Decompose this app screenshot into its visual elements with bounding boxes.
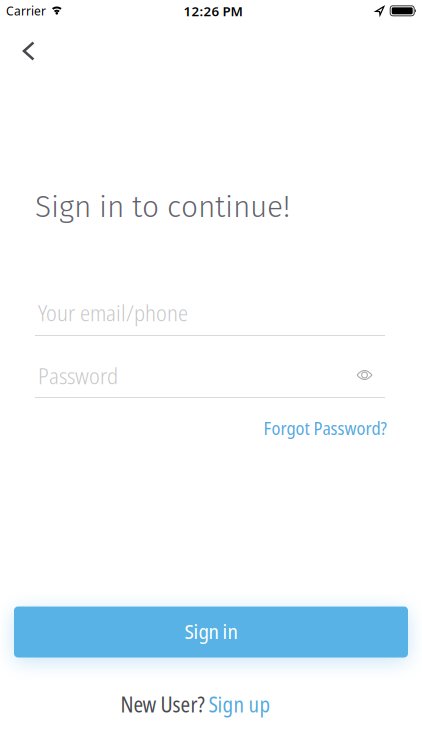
staticText: Sign in — [184, 617, 237, 645]
staticText: Sign up — [208, 690, 270, 719]
staticText: New User? — [120, 690, 204, 719]
staticText: 12:26 PM — [183, 2, 242, 20]
staticText: Carrier — [6, 3, 46, 19]
staticText: Password — [38, 360, 118, 391]
staticText: Your email/phone — [38, 297, 188, 328]
button[interactable]: Sign in — [14, 606, 408, 657]
button[interactable]: Show password — [350, 362, 378, 388]
button[interactable]: Back — [12, 34, 46, 68]
staticText: Sign in to continue! — [35, 189, 290, 225]
button[interactable]: Sign up — [208, 690, 270, 719]
staticText: Forgot Password? — [263, 416, 386, 440]
button[interactable]: Forgot Password? — [263, 416, 386, 440]
